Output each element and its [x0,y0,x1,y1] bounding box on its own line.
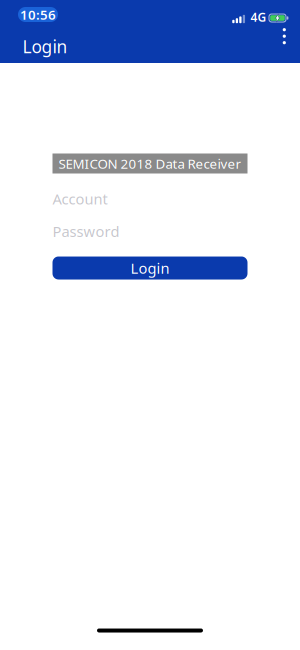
staticText: 10:56 [20,6,56,23]
button[interactable]: More options [274,23,294,49]
button[interactable]: Password [52,217,247,245]
staticText: 4G [250,9,266,25]
staticText: Password [52,221,119,241]
staticText: SEMICON 2018 Data Receiver [58,155,241,172]
button[interactable]: Account [52,185,247,213]
staticText: Login [130,258,169,278]
staticText: Login [22,35,67,58]
staticText: Account [52,189,107,209]
button[interactable]: Login [52,256,247,279]
